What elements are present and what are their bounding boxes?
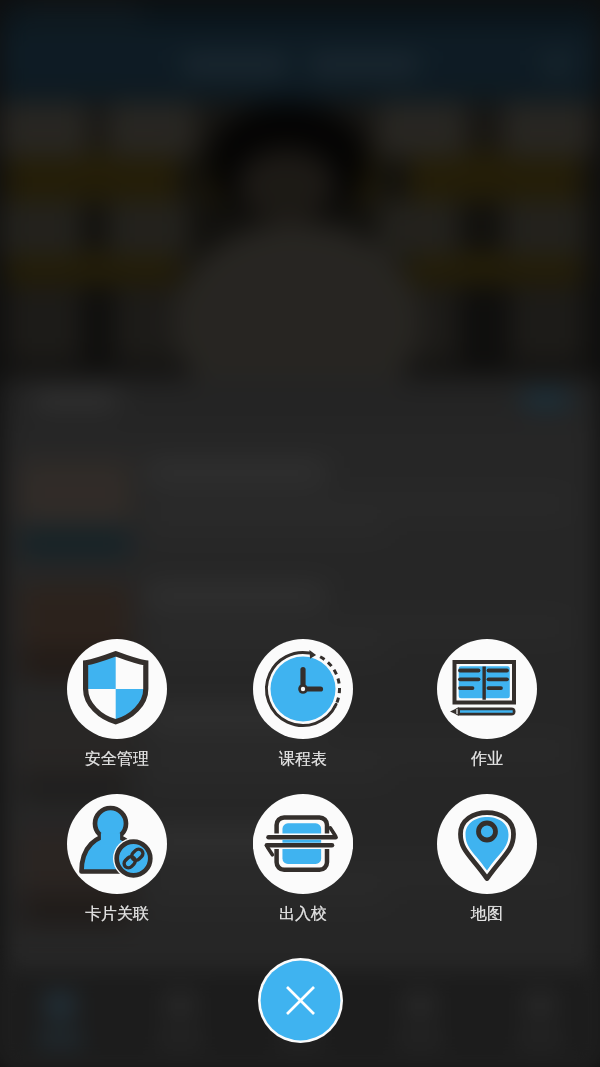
staticText: 安全管理 (85, 749, 149, 769)
staticText: 作业 (471, 749, 503, 769)
button[interactable]: 出入校 (253, 794, 353, 924)
button[interactable]: 安全管理 (67, 639, 167, 769)
button[interactable]: 课程表 (253, 639, 353, 769)
staticText: 地图 (471, 904, 503, 924)
button[interactable]: 地图 (437, 794, 537, 924)
staticText: 卡片关联 (85, 904, 149, 924)
button[interactable]: 作业 (437, 639, 537, 769)
button[interactable]: Close menu (258, 958, 343, 1043)
button[interactable]: 卡片关联 (67, 794, 167, 924)
staticText: 课程表 (279, 749, 327, 769)
staticText: 出入校 (279, 904, 327, 924)
